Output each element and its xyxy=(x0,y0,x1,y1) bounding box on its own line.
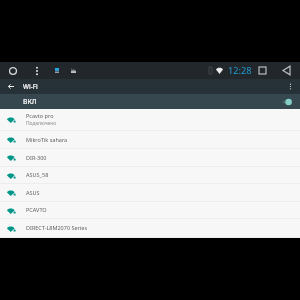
button[interactable]: Menu xyxy=(32,66,42,76)
staticText: ASUS_58 xyxy=(26,171,49,178)
button[interactable]: Recent app xyxy=(71,68,76,73)
button[interactable]: DIR-300 xyxy=(0,149,300,167)
button[interactable]: Recents xyxy=(256,64,269,77)
button[interactable]: Home xyxy=(7,65,19,77)
staticText: ASUS xyxy=(26,189,40,196)
button[interactable]: MikroTik sahara xyxy=(0,131,300,149)
staticText: Подключено xyxy=(26,120,57,127)
button[interactable]: Wi-Fi toggle xyxy=(282,98,293,106)
button[interactable]: PCAVTO xyxy=(0,202,300,219)
staticText: Pcavto pro xyxy=(26,112,54,119)
button[interactable]: Recent app xyxy=(55,68,59,73)
staticText: DIR-300 xyxy=(26,154,47,161)
button[interactable]: More options xyxy=(285,81,296,92)
button[interactable]: Pcavto pro xyxy=(0,109,300,131)
staticText: DIRECT-L8M2070 Series xyxy=(26,224,88,231)
button[interactable]: Navigate up xyxy=(5,81,16,92)
staticText: 12:28 xyxy=(228,64,252,77)
button[interactable]: DIRECT-L8M2070 Series xyxy=(0,219,300,238)
button[interactable]: Back xyxy=(280,64,293,77)
button[interactable]: ВКЛ xyxy=(0,94,300,109)
button[interactable]: ASUS xyxy=(0,184,300,202)
button[interactable]: ASUS_58 xyxy=(0,167,300,184)
staticText: PCAVTO xyxy=(26,206,47,213)
staticText: Wi-Fi xyxy=(23,82,38,91)
staticText: ВКЛ xyxy=(23,97,37,106)
staticText: MikroTik sahara xyxy=(26,136,68,143)
